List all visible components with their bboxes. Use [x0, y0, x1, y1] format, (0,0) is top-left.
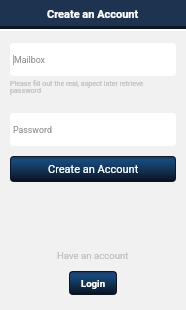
staticText: Mailbox [14, 55, 45, 65]
staticText: Password [13, 125, 52, 135]
staticText: Create an Account [48, 163, 139, 176]
staticText: Please fill out the real, aspect later r… [10, 79, 150, 95]
button[interactable]: Create an Account [11, 157, 175, 181]
staticText: Have an account [57, 250, 129, 261]
button[interactable]: Password [10, 113, 176, 146]
staticText: Login [81, 278, 106, 289]
staticText: Create an Account [47, 8, 139, 21]
button[interactable]: Login [70, 272, 116, 294]
button[interactable]: Mailbox [10, 43, 176, 76]
